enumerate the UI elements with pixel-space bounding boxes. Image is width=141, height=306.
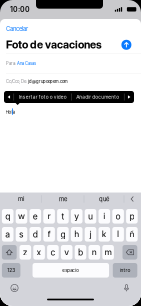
button[interactable]: qué — [85, 192, 123, 206]
staticText: l — [117, 229, 119, 239]
staticText: a — [5, 229, 10, 239]
button[interactable]: p — [126, 209, 138, 224]
button[interactable]: a — [2, 227, 13, 242]
button[interactable]: Emoji — [7, 281, 21, 295]
button[interactable]: o — [112, 209, 124, 224]
button[interactable]: q — [2, 209, 13, 224]
button[interactable]: s — [16, 227, 27, 242]
button[interactable]: h — [71, 227, 82, 242]
staticText: x — [37, 247, 42, 257]
staticText: k — [102, 229, 107, 239]
button[interactable]: espacio — [32, 263, 109, 278]
button[interactable]: g — [57, 227, 69, 242]
button[interactable]: y — [71, 209, 82, 224]
button[interactable]: v — [61, 245, 72, 260]
staticText: n — [92, 247, 97, 257]
staticText: Cc/Cco, De: — [6, 79, 27, 84]
staticText: 10:00 — [10, 5, 30, 14]
staticText: Hola — [5, 109, 15, 115]
button[interactable]: k — [98, 227, 110, 242]
staticText: i — [103, 211, 105, 221]
staticText: g — [60, 229, 65, 239]
button[interactable]: Insertar foto o vídeo — [14, 91, 71, 103]
button[interactable]: j — [85, 227, 96, 242]
staticText: c — [50, 247, 55, 257]
button[interactable]: Para: — [6, 54, 135, 73]
staticText: qué — [99, 195, 109, 203]
staticText: mi — [18, 195, 24, 203]
button[interactable]: n — [88, 245, 100, 260]
button[interactable]: Cc/Cco, De: — [6, 73, 135, 89]
button[interactable]: Mayúsculas — [2, 245, 17, 260]
staticText: espacio — [62, 268, 79, 273]
staticText: s — [19, 229, 24, 239]
button[interactable]: Ocultar predicciones — [125, 192, 138, 206]
staticText: ñ — [129, 229, 134, 239]
button[interactable]: Siguiente — [124, 91, 134, 103]
staticText: v — [64, 247, 69, 257]
button[interactable]: b — [75, 245, 86, 260]
staticText: o — [116, 211, 121, 221]
staticText: intro — [120, 267, 131, 273]
button[interactable]: Retroceso — [122, 245, 137, 260]
button[interactable]: Anterior — [4, 91, 13, 103]
button[interactable]: c — [47, 245, 59, 260]
staticText: t — [61, 211, 64, 221]
button[interactable]: 123 — [2, 263, 20, 278]
button[interactable]: l — [112, 227, 124, 242]
button[interactable]: ñ — [126, 227, 138, 242]
button[interactable]: e — [29, 209, 41, 224]
staticText: 123 — [7, 267, 15, 273]
staticText: jd@grupoopem.com — [27, 79, 68, 84]
staticText: b — [78, 247, 83, 257]
staticText: p — [129, 211, 134, 221]
button[interactable]: w — [16, 209, 27, 224]
staticText: y — [74, 211, 79, 221]
staticText: h — [74, 229, 79, 239]
staticText: m — [105, 247, 112, 257]
staticText: w — [18, 211, 25, 221]
button[interactable]: Enviar — [120, 39, 132, 51]
button[interactable]: r — [43, 209, 55, 224]
button[interactable]: intro — [113, 263, 137, 278]
staticText: q — [5, 211, 10, 221]
staticText: u — [88, 211, 93, 221]
staticText: Cancelar — [6, 25, 28, 32]
staticText: r — [48, 211, 51, 221]
staticText: d — [33, 229, 38, 239]
button[interactable]: u — [85, 209, 96, 224]
button[interactable]: me — [43, 192, 83, 206]
button[interactable]: Añadir documento — [72, 91, 124, 103]
button[interactable]: t — [57, 209, 69, 224]
staticText: z — [23, 247, 28, 257]
button[interactable]: z — [19, 245, 31, 260]
staticText: Foto de vacaciones — [6, 38, 102, 51]
button[interactable]: m — [102, 245, 114, 260]
staticText: Ana Casas — [16, 61, 36, 66]
button[interactable]: f — [43, 227, 55, 242]
staticText: Añadir documento — [76, 94, 119, 100]
button[interactable]: Dictado — [119, 281, 133, 295]
staticText: Para: — [6, 61, 16, 66]
staticText: Insertar foto o vídeo — [19, 94, 67, 100]
button[interactable]: x — [33, 245, 45, 260]
button[interactable]: i — [98, 209, 110, 224]
staticText: e — [33, 211, 38, 221]
staticText: j — [89, 229, 91, 239]
staticText: me — [59, 195, 67, 203]
button[interactable]: mi — [1, 192, 41, 206]
button[interactable]: d — [29, 227, 41, 242]
staticText: f — [48, 229, 51, 239]
button[interactable]: Cancelar — [6, 24, 40, 34]
